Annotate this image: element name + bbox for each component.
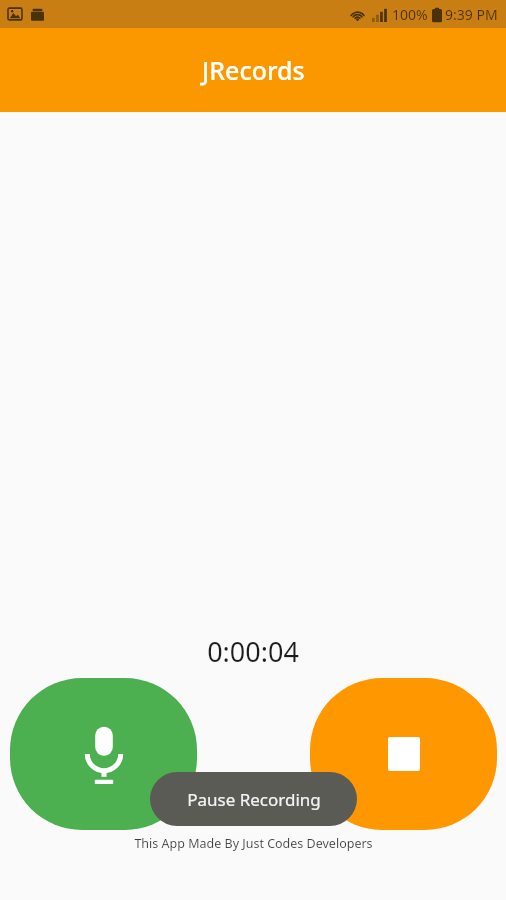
staticText: JRecords [202, 53, 305, 87]
staticText: 0:00:04 [207, 633, 299, 670]
button[interactable]: Stop [310, 678, 497, 830]
staticText: 100% [392, 5, 428, 24]
staticText: 9:39 PM [445, 5, 498, 24]
staticText: This App Made By Just Codes Developers [134, 835, 373, 852]
staticText: Pause Recording [187, 788, 321, 811]
button[interactable]: Record [10, 678, 197, 830]
